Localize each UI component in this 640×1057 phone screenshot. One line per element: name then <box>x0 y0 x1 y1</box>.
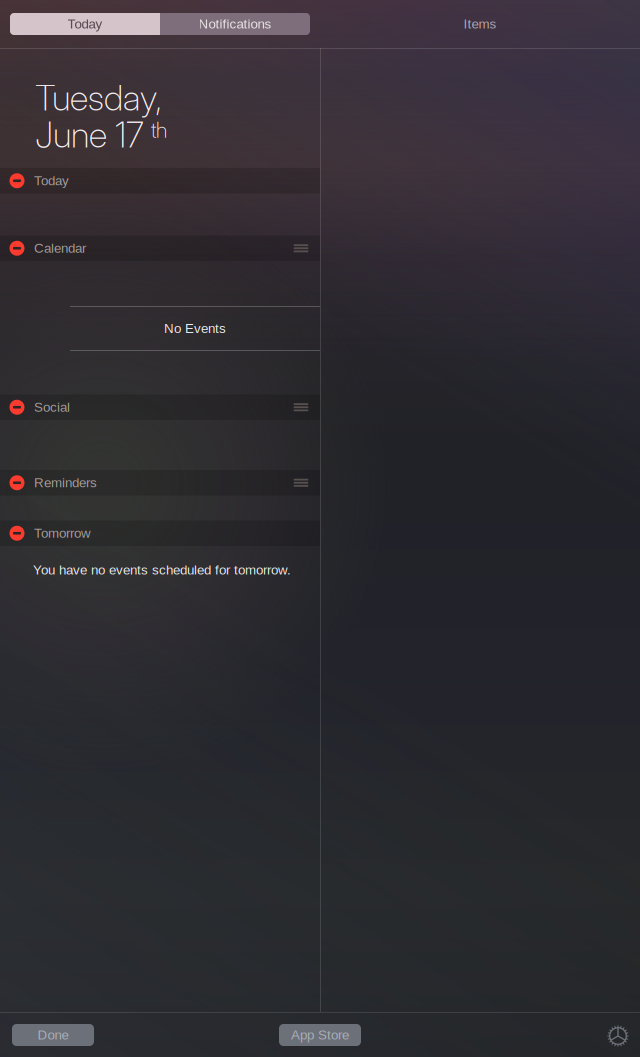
staticText: th <box>151 117 167 143</box>
staticText: Done <box>37 1028 68 1042</box>
staticText: You have no events scheduled for tomorro… <box>33 563 291 577</box>
button[interactable]: Reminders <box>0 470 320 495</box>
staticText: Calendar <box>34 241 86 256</box>
staticText: App Store <box>291 1028 349 1042</box>
staticText: No Events <box>164 321 226 336</box>
button[interactable]: Today <box>0 168 320 193</box>
staticText: Items <box>463 17 496 31</box>
button[interactable]: Calendar <box>0 235 320 261</box>
button[interactable]: Settings <box>607 1025 629 1047</box>
staticText: Today <box>67 17 102 31</box>
staticText: Social <box>34 400 70 415</box>
button[interactable]: Social <box>0 394 320 420</box>
staticText: Tuesday, <box>35 77 162 119</box>
button[interactable]: Notifications <box>160 13 310 35</box>
staticText: June 17 <box>35 114 144 156</box>
button[interactable]: App Store <box>279 1024 361 1046</box>
button[interactable]: Today <box>10 13 160 35</box>
staticText: Notifications <box>198 17 271 31</box>
button[interactable]: Done <box>12 1024 94 1046</box>
staticText: Reminders <box>34 475 97 490</box>
button[interactable]: Tomorrow <box>0 520 320 546</box>
staticText: Today <box>34 173 69 188</box>
staticText: Tomorrow <box>34 526 91 541</box>
